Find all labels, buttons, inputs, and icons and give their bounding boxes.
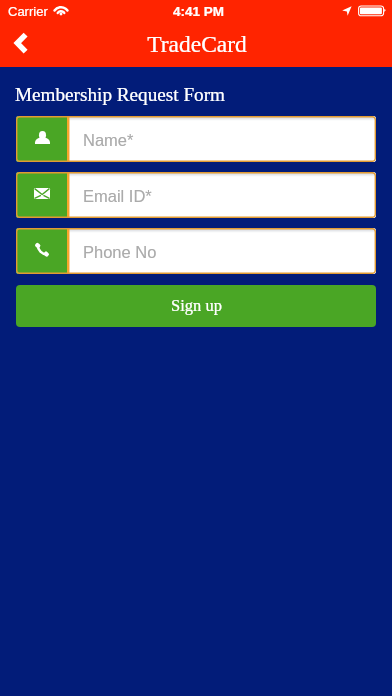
staticText: Membership Request Form: [15, 84, 225, 105]
button[interactable]: Email ID*: [16, 172, 376, 218]
other: Battery: [358, 5, 387, 17]
button[interactable]: Phone No: [16, 228, 376, 274]
staticText: Sign up: [171, 296, 222, 314]
button[interactable]: Sign up: [16, 285, 376, 327]
other: Location: [342, 6, 352, 16]
button[interactable]: Name*: [16, 116, 376, 162]
staticText: 4:41 PM: [173, 4, 225, 19]
staticText: Email ID*: [83, 187, 152, 205]
staticText: TradeCard: [147, 31, 247, 57]
staticText: Phone No: [83, 243, 157, 261]
staticText: Carrier: [8, 4, 48, 19]
button[interactable]: Back: [4, 25, 40, 61]
staticText: Name*: [83, 131, 134, 149]
